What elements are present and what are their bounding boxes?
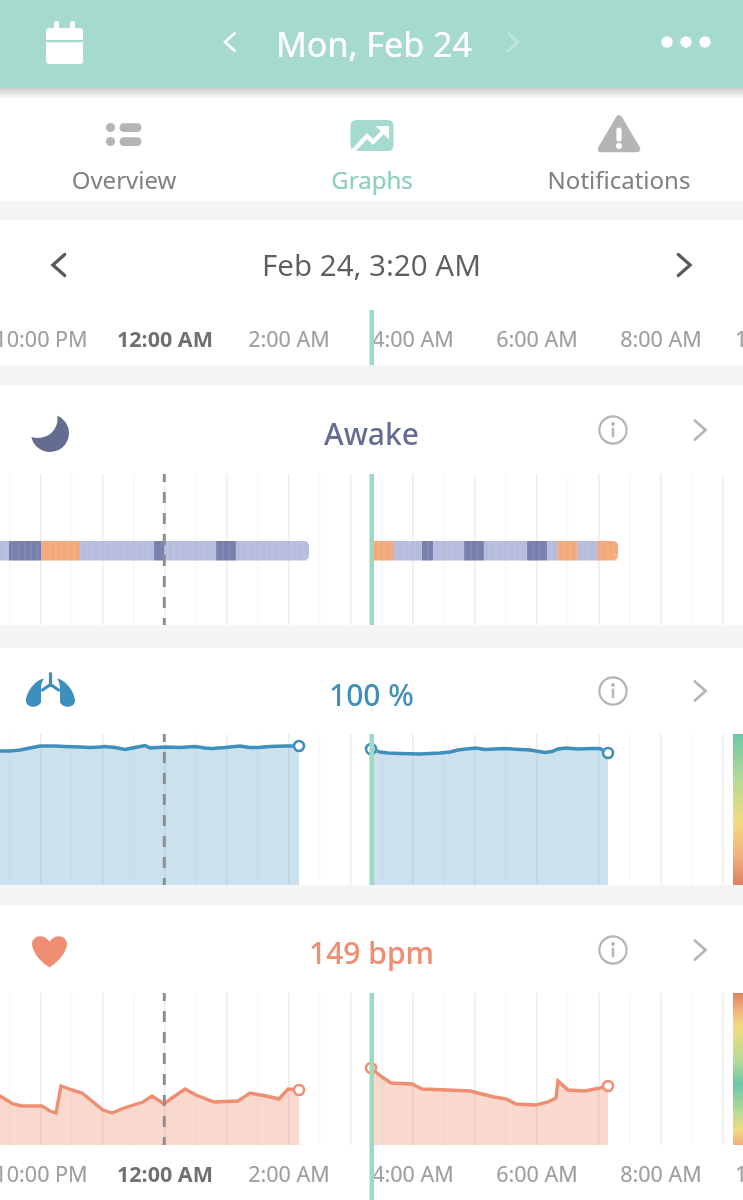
button[interactable]: Previous	[37, 243, 81, 287]
staticText: 4:00 AM	[333, 324, 493, 353]
staticText: Notifications	[499, 163, 739, 196]
button[interactable]: Details	[680, 671, 720, 711]
staticText: 8:00 AM	[581, 1159, 741, 1188]
button[interactable]: Info	[598, 935, 628, 965]
button[interactable]: Graphs	[252, 88, 492, 201]
button[interactable]: Next day	[495, 24, 531, 60]
staticText: 6:00 AM	[457, 324, 617, 353]
staticText: 2:00 AM	[209, 324, 369, 353]
staticText: 149 bpm	[309, 932, 434, 973]
button[interactable]: Notifications	[499, 88, 739, 201]
button[interactable]: 100 %	[0, 648, 743, 734]
staticText: Feb 24, 3:20 AM	[262, 244, 481, 284]
staticText: 12:00 AM	[85, 1159, 245, 1188]
button[interactable]: More options	[649, 24, 721, 60]
staticText: 1	[735, 1159, 743, 1188]
staticText: 100 %	[329, 674, 414, 715]
button[interactable]: Calendar	[34, 14, 94, 74]
staticText: Graphs	[252, 163, 492, 196]
staticText: 4:00 AM	[333, 1159, 493, 1188]
button[interactable]: Next	[662, 243, 706, 287]
staticText: 6:00 AM	[457, 1159, 617, 1188]
button[interactable]: 149 bpm	[0, 906, 743, 993]
staticText: 12:00 AM	[85, 324, 245, 353]
staticText: Mon, Feb 24	[276, 21, 472, 67]
button[interactable]: Overview	[4, 88, 244, 201]
staticText: 10:00 PM	[0, 1159, 121, 1188]
button[interactable]: Awake	[0, 386, 743, 474]
staticText: 2:00 AM	[209, 1159, 369, 1188]
staticText: Overview	[4, 163, 244, 196]
staticText: 10:00 PM	[0, 324, 121, 353]
staticText: 8:00 AM	[581, 324, 741, 353]
button[interactable]: Details	[680, 410, 720, 450]
button[interactable]: Info	[598, 415, 628, 445]
staticText: Awake	[324, 413, 420, 454]
button[interactable]: Previous day	[212, 24, 248, 60]
staticText: 1	[735, 324, 743, 353]
button[interactable]: Info	[598, 676, 628, 706]
button[interactable]: Details	[680, 930, 720, 970]
